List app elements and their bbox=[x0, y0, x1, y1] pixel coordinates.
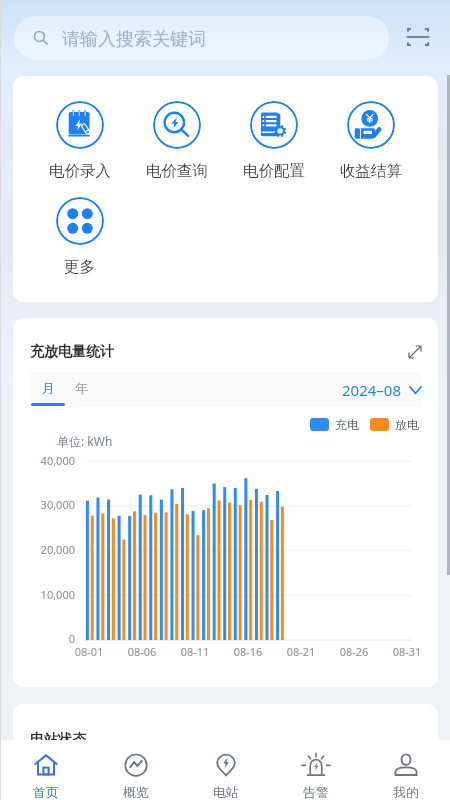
staticText: 更多 bbox=[64, 257, 95, 277]
staticText: 20,000 bbox=[15, 542, 75, 557]
staticText: 月 bbox=[42, 380, 55, 396]
staticText: 我的 bbox=[393, 784, 419, 800]
staticText: 08-16 bbox=[228, 644, 268, 659]
button[interactable]: 电价查询 bbox=[128, 101, 225, 181]
staticText: 请输入搜索关键词 bbox=[62, 28, 206, 51]
staticText: 0 bbox=[15, 631, 75, 646]
staticText: 电站 bbox=[213, 784, 239, 800]
staticText: 08-21 bbox=[281, 644, 321, 659]
button[interactable]: 2024–08 bbox=[342, 372, 422, 408]
button[interactable]: 我的 bbox=[361, 740, 450, 800]
staticText: 30,000 bbox=[15, 497, 75, 512]
staticText: 08-26 bbox=[334, 644, 374, 659]
button[interactable]: 月 bbox=[22, 372, 74, 408]
staticText: 2024–08 bbox=[342, 380, 401, 400]
button[interactable]: 年 bbox=[55, 372, 107, 408]
staticText: 40,000 bbox=[15, 453, 75, 468]
staticText: 08-06 bbox=[122, 644, 162, 659]
staticText: 概览 bbox=[123, 784, 149, 800]
staticText: 告警 bbox=[303, 784, 329, 800]
button[interactable]: Scan QR code bbox=[406, 25, 430, 49]
staticText: 电价录入 bbox=[49, 161, 111, 181]
staticText: 08-11 bbox=[175, 644, 215, 659]
staticText: 收益结算 bbox=[340, 161, 402, 181]
button[interactable]: 告警 bbox=[271, 740, 361, 800]
staticText: 放电 bbox=[395, 417, 419, 432]
staticText: 10,000 bbox=[15, 587, 75, 602]
staticText: 电站状态 bbox=[30, 731, 86, 740]
button[interactable]: 电价配置 bbox=[225, 101, 322, 181]
staticText: 年 bbox=[75, 380, 88, 396]
staticText: 充电 bbox=[335, 417, 359, 432]
staticText: 08-31 bbox=[387, 644, 427, 659]
staticText: 充放电量统计 bbox=[30, 343, 114, 361]
button[interactable]: 更多 bbox=[31, 197, 128, 277]
staticText: 首页 bbox=[33, 784, 59, 800]
button[interactable]: 电站 bbox=[181, 740, 271, 800]
staticText: 08-01 bbox=[69, 644, 109, 659]
button[interactable]: 收益结算 bbox=[322, 101, 419, 181]
button[interactable]: 概览 bbox=[91, 740, 181, 800]
button[interactable]: 请输入搜索关键词 bbox=[14, 16, 389, 60]
button[interactable]: Expand chart bbox=[405, 342, 425, 362]
staticText: 单位: kWh bbox=[57, 433, 113, 449]
staticText: 电价查询 bbox=[146, 161, 208, 181]
button[interactable]: 首页 bbox=[1, 740, 91, 800]
staticText: 电价配置 bbox=[243, 161, 305, 181]
button[interactable]: 电价录入 bbox=[31, 101, 128, 181]
